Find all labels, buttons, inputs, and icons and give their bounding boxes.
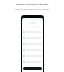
button[interactable] [23,42,42,45]
button[interactable] [23,36,42,39]
button[interactable] [23,48,42,51]
staticText: Results are based on real data. [16,3,49,6]
button[interactable] [23,30,42,33]
staticText: They the best tool to track uploads [15,8,49,11]
button[interactable]: Continue [23,67,42,70]
button[interactable] [23,60,42,63]
button[interactable] [23,54,42,57]
